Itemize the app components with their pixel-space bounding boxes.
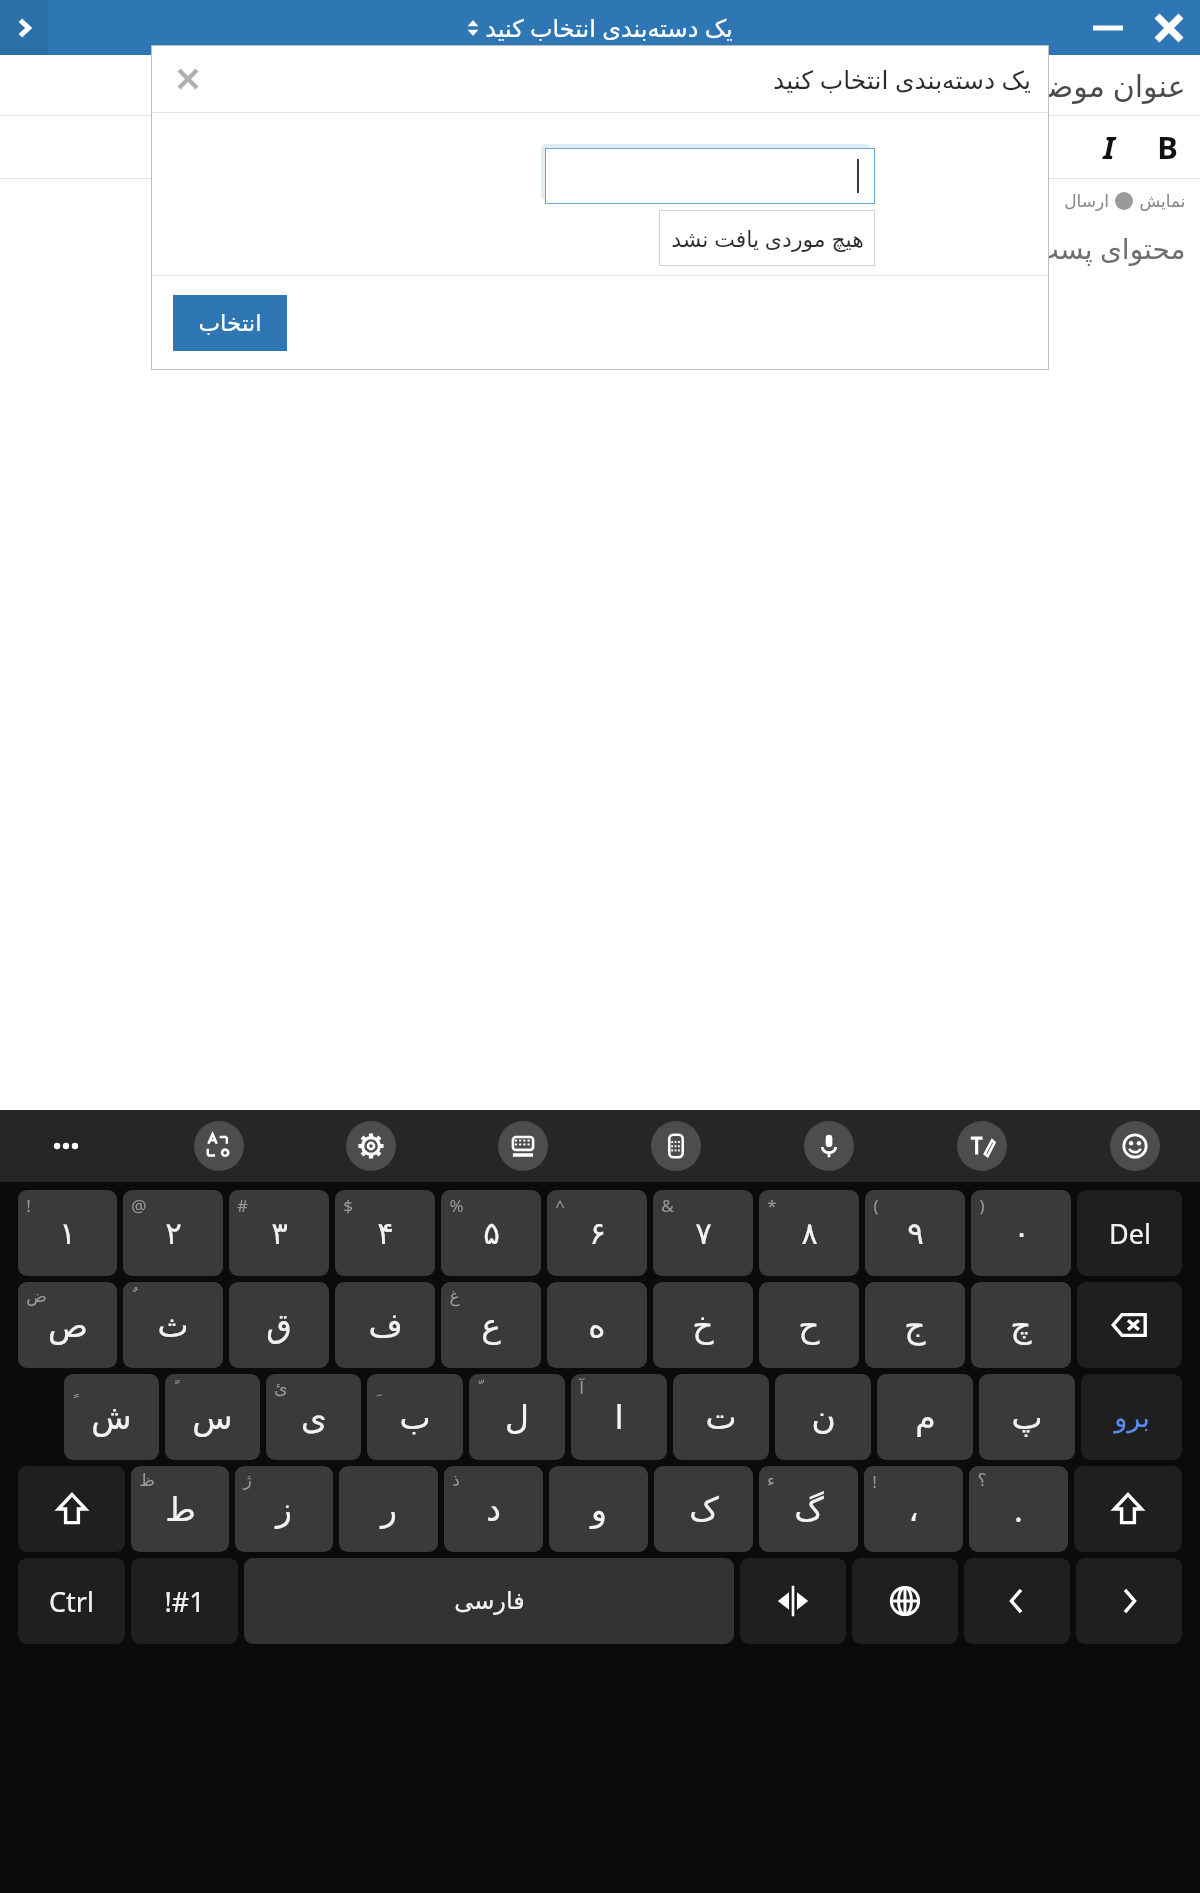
button[interactable]: ه (547, 1282, 647, 1368)
button[interactable]: Change language (852, 1558, 958, 1644)
button[interactable]: More options (40, 1120, 92, 1172)
button[interactable]: ف (335, 1282, 435, 1368)
button[interactable]: م (877, 1374, 973, 1460)
button[interactable]: Move cursor (740, 1558, 846, 1644)
button[interactable]: ) (971, 1190, 1071, 1276)
staticText: $ (343, 1194, 353, 1217)
button[interactable]: Shift (1074, 1466, 1182, 1552)
button[interactable]: Shift (18, 1466, 125, 1552)
button[interactable]: Minimize (1078, 0, 1138, 55)
staticText: ز (276, 1490, 292, 1528)
staticText: ش (91, 1398, 132, 1436)
button[interactable]: ؟ (969, 1466, 1068, 1552)
button[interactable]: ک (654, 1466, 753, 1552)
button[interactable]: ء (759, 1466, 858, 1552)
button[interactable]: Close (1138, 0, 1200, 55)
staticText: ۰ (1013, 1215, 1030, 1251)
button[interactable]: ر (339, 1466, 438, 1552)
button[interactable]: چ (971, 1282, 1071, 1368)
staticText: * (767, 1194, 777, 1217)
button[interactable]: Del (1077, 1190, 1182, 1276)
staticText: ج (904, 1306, 926, 1344)
staticText: !#1 (164, 1583, 205, 1620)
button[interactable]: ژ (235, 1466, 333, 1552)
staticText: ۶ (589, 1215, 606, 1251)
button[interactable]: Keyboard layout (498, 1121, 548, 1171)
button[interactable]: ظ (131, 1466, 229, 1552)
button[interactable]: !#1 (131, 1558, 238, 1644)
staticText: گ (794, 1490, 824, 1528)
button[interactable]: ! (864, 1466, 963, 1552)
button[interactable]: ج (865, 1282, 965, 1368)
staticText: د (486, 1490, 501, 1528)
staticText: ع (481, 1306, 501, 1344)
staticText: @ (131, 1194, 147, 1217)
staticText: ! (26, 1194, 31, 1217)
staticText: ظ (139, 1470, 155, 1490)
staticText: ح (798, 1306, 820, 1344)
button[interactable]: ق (229, 1282, 329, 1368)
button[interactable]: Next (1076, 1558, 1182, 1644)
staticText: خ (692, 1306, 714, 1344)
button[interactable]: ت (673, 1374, 769, 1460)
staticText: ۴ (377, 1215, 394, 1251)
staticText: ط (165, 1490, 196, 1528)
staticText: یک دسته‌بندی انتخاب کنید (485, 11, 733, 44)
button[interactable]: * (759, 1190, 859, 1276)
button[interactable]: ٍ (64, 1374, 159, 1460)
button[interactable]: & (653, 1190, 753, 1276)
button[interactable]: انتخاب (173, 295, 287, 351)
button[interactable]: ّ (469, 1374, 565, 1460)
button[interactable]: @ (123, 1190, 223, 1276)
staticText: ذ (452, 1470, 460, 1490)
staticText: انتخاب (198, 310, 262, 337)
button[interactable]: پ (979, 1374, 1075, 1460)
button[interactable]: ح (759, 1282, 859, 1368)
button[interactable]: و (549, 1466, 648, 1552)
staticText: یک دسته‌بندی انتخاب کنید (773, 62, 1031, 96)
button[interactable]: Emoji (1110, 1121, 1160, 1171)
button[interactable]: Voice input (804, 1121, 854, 1171)
button[interactable]: ئ (266, 1374, 361, 1460)
staticText: ۱ (59, 1215, 76, 1251)
button[interactable]: Backspace (1077, 1282, 1182, 1368)
staticText: س (192, 1398, 233, 1436)
button[interactable]: ^ (547, 1190, 647, 1276)
button[interactable]: ض (18, 1282, 117, 1368)
button[interactable]: ِ (367, 1374, 463, 1460)
staticText: ک (689, 1490, 719, 1528)
button[interactable]: Ctrl (18, 1558, 125, 1644)
button[interactable]: ذ (444, 1466, 543, 1552)
staticText: نمایش (1139, 191, 1186, 211)
button[interactable]: Back (0, 0, 48, 55)
button[interactable]: B (1138, 118, 1196, 176)
button[interactable]: آ (571, 1374, 667, 1460)
button[interactable]: ن (775, 1374, 871, 1460)
button[interactable]: ! (18, 1190, 117, 1276)
button[interactable]: ( (865, 1190, 965, 1276)
staticText: ص (48, 1306, 88, 1344)
button[interactable]: % (441, 1190, 541, 1276)
button[interactable]: Translate (194, 1121, 244, 1171)
button[interactable]: $ (335, 1190, 435, 1276)
button[interactable]: فارسی (244, 1558, 734, 1644)
staticText: Ctrl (49, 1583, 94, 1620)
button[interactable]: # (229, 1190, 329, 1276)
button[interactable]: Numeric pad (651, 1121, 701, 1171)
button[interactable]: برو (1081, 1374, 1182, 1460)
button[interactable]: I (1080, 118, 1138, 176)
button[interactable]: غ (441, 1282, 541, 1368)
staticText: چ (1010, 1306, 1032, 1344)
staticText: & (661, 1194, 674, 1217)
button[interactable]: ً (165, 1374, 260, 1460)
staticText: ! (872, 1470, 877, 1493)
button[interactable]: Handwriting (957, 1121, 1007, 1171)
button[interactable]: خ (653, 1282, 753, 1368)
button[interactable]: Close dialog (165, 56, 211, 102)
button[interactable] (545, 148, 875, 204)
button[interactable]: ٌ (123, 1282, 223, 1368)
button[interactable]: Settings (346, 1121, 396, 1171)
staticText: ه (588, 1306, 606, 1344)
button[interactable]: Previous (964, 1558, 1070, 1644)
staticText: ث (157, 1306, 189, 1344)
